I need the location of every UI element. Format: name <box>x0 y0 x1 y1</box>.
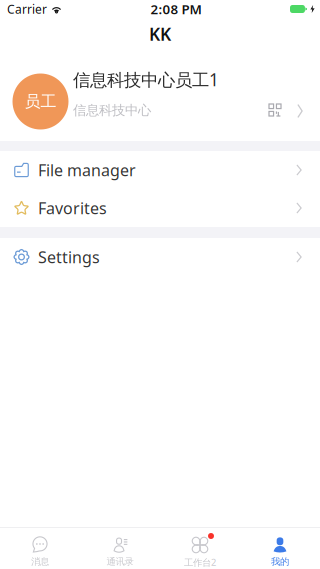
staticText: 信息科技中心员工1 <box>73 68 219 91</box>
button[interactable]: 员工 <box>0 50 320 141</box>
button[interactable]: 通讯录 <box>80 528 160 569</box>
staticText: 2:08 PM <box>150 0 201 18</box>
staticText: Carrier <box>7 1 47 17</box>
button[interactable]: 工作台2 <box>160 528 240 569</box>
staticText: 信息科技中心 <box>73 102 151 118</box>
staticText: 我的 <box>271 556 289 567</box>
staticText: Favorites <box>38 197 107 219</box>
staticText: 员工 <box>24 92 56 111</box>
button[interactable]: 消息 <box>0 528 80 569</box>
button[interactable]: 我的 <box>240 528 320 569</box>
staticText: 工作台2 <box>184 556 216 568</box>
staticText: KK <box>149 22 171 45</box>
staticText: File manager <box>38 159 136 181</box>
button[interactable]: Favorites <box>0 189 320 227</box>
button[interactable]: File manager <box>0 151 320 189</box>
button[interactable]: QR code <box>264 50 286 121</box>
staticText: 通讯录 <box>106 556 133 567</box>
staticText: 消息 <box>31 556 49 567</box>
staticText: Settings <box>38 246 100 268</box>
button[interactable]: Settings <box>0 238 320 276</box>
